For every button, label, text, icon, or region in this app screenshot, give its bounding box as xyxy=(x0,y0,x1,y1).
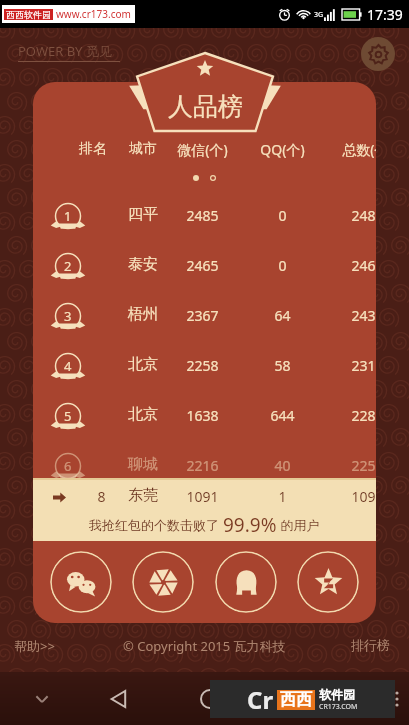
staticText: Cr xyxy=(247,683,274,716)
staticText: 聊城 xyxy=(128,455,158,474)
staticText: 40 xyxy=(274,456,291,475)
staticText: 3 xyxy=(64,307,72,325)
button[interactable]: Settings xyxy=(361,37,395,71)
staticText: 2258 xyxy=(186,356,219,375)
staticText: 99.9% xyxy=(223,512,277,538)
staticText: 的用户 xyxy=(277,516,320,534)
button[interactable]: Share to QQ xyxy=(215,551,277,613)
staticText: 2 xyxy=(64,257,72,275)
staticText: 3G xyxy=(314,10,324,20)
staticText: 梧州 xyxy=(128,305,158,324)
button[interactable]: Back xyxy=(96,677,140,721)
staticText: 北京 xyxy=(128,405,158,424)
button[interactable]: Home xyxy=(188,677,232,721)
staticText: 2431 xyxy=(351,306,376,325)
staticText: 排名 xyxy=(79,140,107,158)
staticText: 1 xyxy=(64,207,72,225)
button[interactable]: Share to WeChat xyxy=(50,551,112,613)
staticText: QQ(个) xyxy=(260,140,305,159)
staticText: © Copyright 2015 瓦力科技 xyxy=(123,637,286,655)
staticText: 8 xyxy=(97,487,106,506)
staticText: 2485 xyxy=(186,206,219,225)
button[interactable]: 4 xyxy=(33,343,376,393)
staticText: 2316 xyxy=(351,356,376,375)
staticText: 软件园 xyxy=(319,687,355,702)
staticText: 我抢红包的个数击败了 xyxy=(89,516,223,534)
staticText: 4 xyxy=(64,357,72,375)
staticText: www.cr173.com xyxy=(56,7,131,21)
staticText: 0 xyxy=(278,206,287,225)
staticText: 四平 xyxy=(128,205,158,224)
staticText: 1091 xyxy=(186,487,219,506)
button[interactable]: Share to WeChat Moments xyxy=(132,551,194,613)
button[interactable]: 帮助>> xyxy=(14,637,55,655)
staticText: 1638 xyxy=(186,406,219,425)
staticText: 城市 xyxy=(129,140,157,158)
staticText: 2485 xyxy=(351,206,376,225)
staticText: 2282 xyxy=(351,406,376,425)
staticText: 6 xyxy=(64,457,72,475)
staticText: 2465 xyxy=(186,256,219,275)
staticText: POWER BY 觅见 xyxy=(18,42,112,60)
staticText: 帮助>> xyxy=(14,637,55,655)
staticText: CR173.COM xyxy=(319,702,358,712)
staticText: 2367 xyxy=(186,306,219,325)
staticText: 64 xyxy=(274,306,291,325)
staticText: 17:39 xyxy=(367,5,403,24)
staticText: 1 xyxy=(278,487,287,506)
staticText: 排行榜 xyxy=(351,637,390,653)
staticText: 644 xyxy=(270,406,295,425)
staticText: 人品榜 xyxy=(168,91,243,122)
button[interactable]: 6 xyxy=(33,443,376,493)
staticText: 总数(个) xyxy=(342,140,376,159)
button[interactable]: 5 xyxy=(33,393,376,443)
staticText: 西西软件园 xyxy=(6,9,51,20)
button[interactable]: 8 xyxy=(33,478,376,541)
staticText: 西西 xyxy=(280,690,312,710)
button[interactable]: 3 xyxy=(33,293,376,343)
staticText: 0 xyxy=(278,256,287,275)
staticText: 2216 xyxy=(186,456,219,475)
staticText: 泰安 xyxy=(128,255,158,274)
button[interactable]: Hide keyboard xyxy=(22,679,62,719)
button[interactable]: Share to Qzone xyxy=(297,551,359,613)
staticText: 微信(个) xyxy=(177,140,228,159)
button[interactable]: 2 xyxy=(33,243,376,293)
button[interactable]: 排行榜 xyxy=(351,637,390,653)
staticText: 58 xyxy=(274,356,291,375)
staticText: 北京 xyxy=(128,355,158,374)
staticText: 2256 xyxy=(351,456,376,475)
staticText: 2465 xyxy=(351,256,376,275)
staticText: 5 xyxy=(64,407,72,425)
staticText: 1092 xyxy=(351,487,376,506)
staticText: 东莞 xyxy=(128,486,158,505)
button[interactable]: 1 xyxy=(33,193,376,243)
